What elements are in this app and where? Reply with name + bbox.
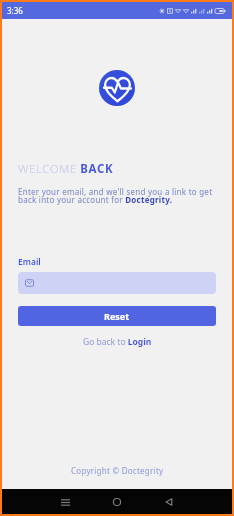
staticText: WELCOME BACK xyxy=(18,161,114,177)
button[interactable]: Home xyxy=(105,490,129,514)
staticText: 3:36 xyxy=(7,5,23,16)
staticText: Go back to Login xyxy=(83,336,152,348)
staticText: Enter your email, and we'll send you a l… xyxy=(18,186,216,205)
staticText: Email xyxy=(18,256,41,268)
button[interactable]: Go back to Login xyxy=(79,334,156,350)
staticText: Copyright © Doctegrity xyxy=(71,465,164,476)
button[interactable]: Recent apps xyxy=(53,490,77,514)
button[interactable]: Back xyxy=(157,490,181,514)
staticText: Reset xyxy=(104,310,130,322)
button[interactable]: Reset xyxy=(18,306,216,326)
button[interactable] xyxy=(18,272,216,294)
